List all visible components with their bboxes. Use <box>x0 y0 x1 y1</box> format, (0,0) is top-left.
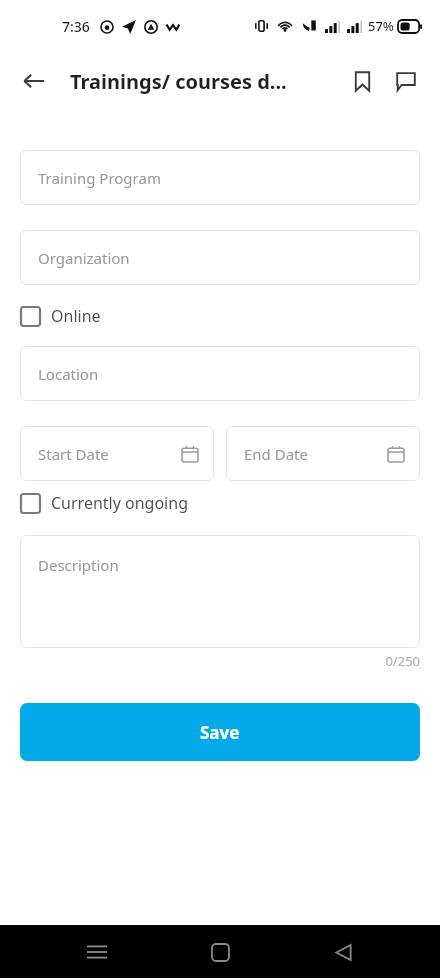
staticText: Trainings/ courses d... <box>70 68 287 95</box>
button[interactable]: Training Program <box>20 150 420 205</box>
button[interactable]: Location <box>20 346 420 401</box>
button[interactable]: Home <box>194 926 246 978</box>
staticText: Location <box>38 364 99 384</box>
staticText: Start Date <box>38 444 109 464</box>
staticText: Currently ongoing <box>51 492 188 514</box>
button[interactable]: Description <box>20 535 420 648</box>
staticText: End Date <box>244 444 308 464</box>
staticText: Online <box>51 305 101 327</box>
staticText: 0/250 <box>20 652 420 670</box>
button[interactable]: Save <box>20 703 420 761</box>
button[interactable]: Back <box>10 57 58 105</box>
button[interactable]: Comments <box>384 59 428 103</box>
staticText: Organization <box>38 248 130 268</box>
staticText: 7:36 <box>62 17 90 36</box>
button[interactable]: Start Date <box>20 426 214 481</box>
staticText: 57% <box>368 17 394 35</box>
staticText: Training Program <box>38 168 161 188</box>
button[interactable]: Bookmark <box>340 59 384 103</box>
button[interactable]: Recent apps <box>71 926 123 978</box>
staticText: Description <box>38 555 119 575</box>
button[interactable]: Organization <box>20 230 420 285</box>
button[interactable]: Currently ongoing <box>20 486 188 520</box>
button[interactable]: Online <box>20 299 101 333</box>
button[interactable]: End Date <box>226 426 420 481</box>
button[interactable]: Back <box>317 926 369 978</box>
staticText: Save <box>200 721 240 744</box>
